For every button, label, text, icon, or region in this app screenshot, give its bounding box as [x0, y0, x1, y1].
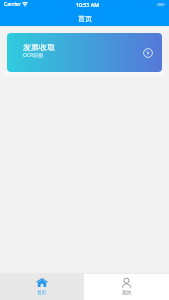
staticText: 首页 [37, 290, 47, 296]
staticText: 首页 [78, 14, 92, 23]
staticText: 我的 [122, 290, 132, 296]
staticText: 10:53 AM [76, 1, 99, 8]
button[interactable]: 我的 [84, 274, 169, 300]
button[interactable]: 首页 [0, 274, 84, 300]
other: Open 发票收取 [143, 48, 153, 58]
staticText: Carrier [4, 1, 21, 8]
button[interactable]: 发票收取 [7, 33, 162, 72]
staticText: 发票收取 [23, 42, 55, 52]
staticText: OCR识别 [23, 52, 44, 59]
